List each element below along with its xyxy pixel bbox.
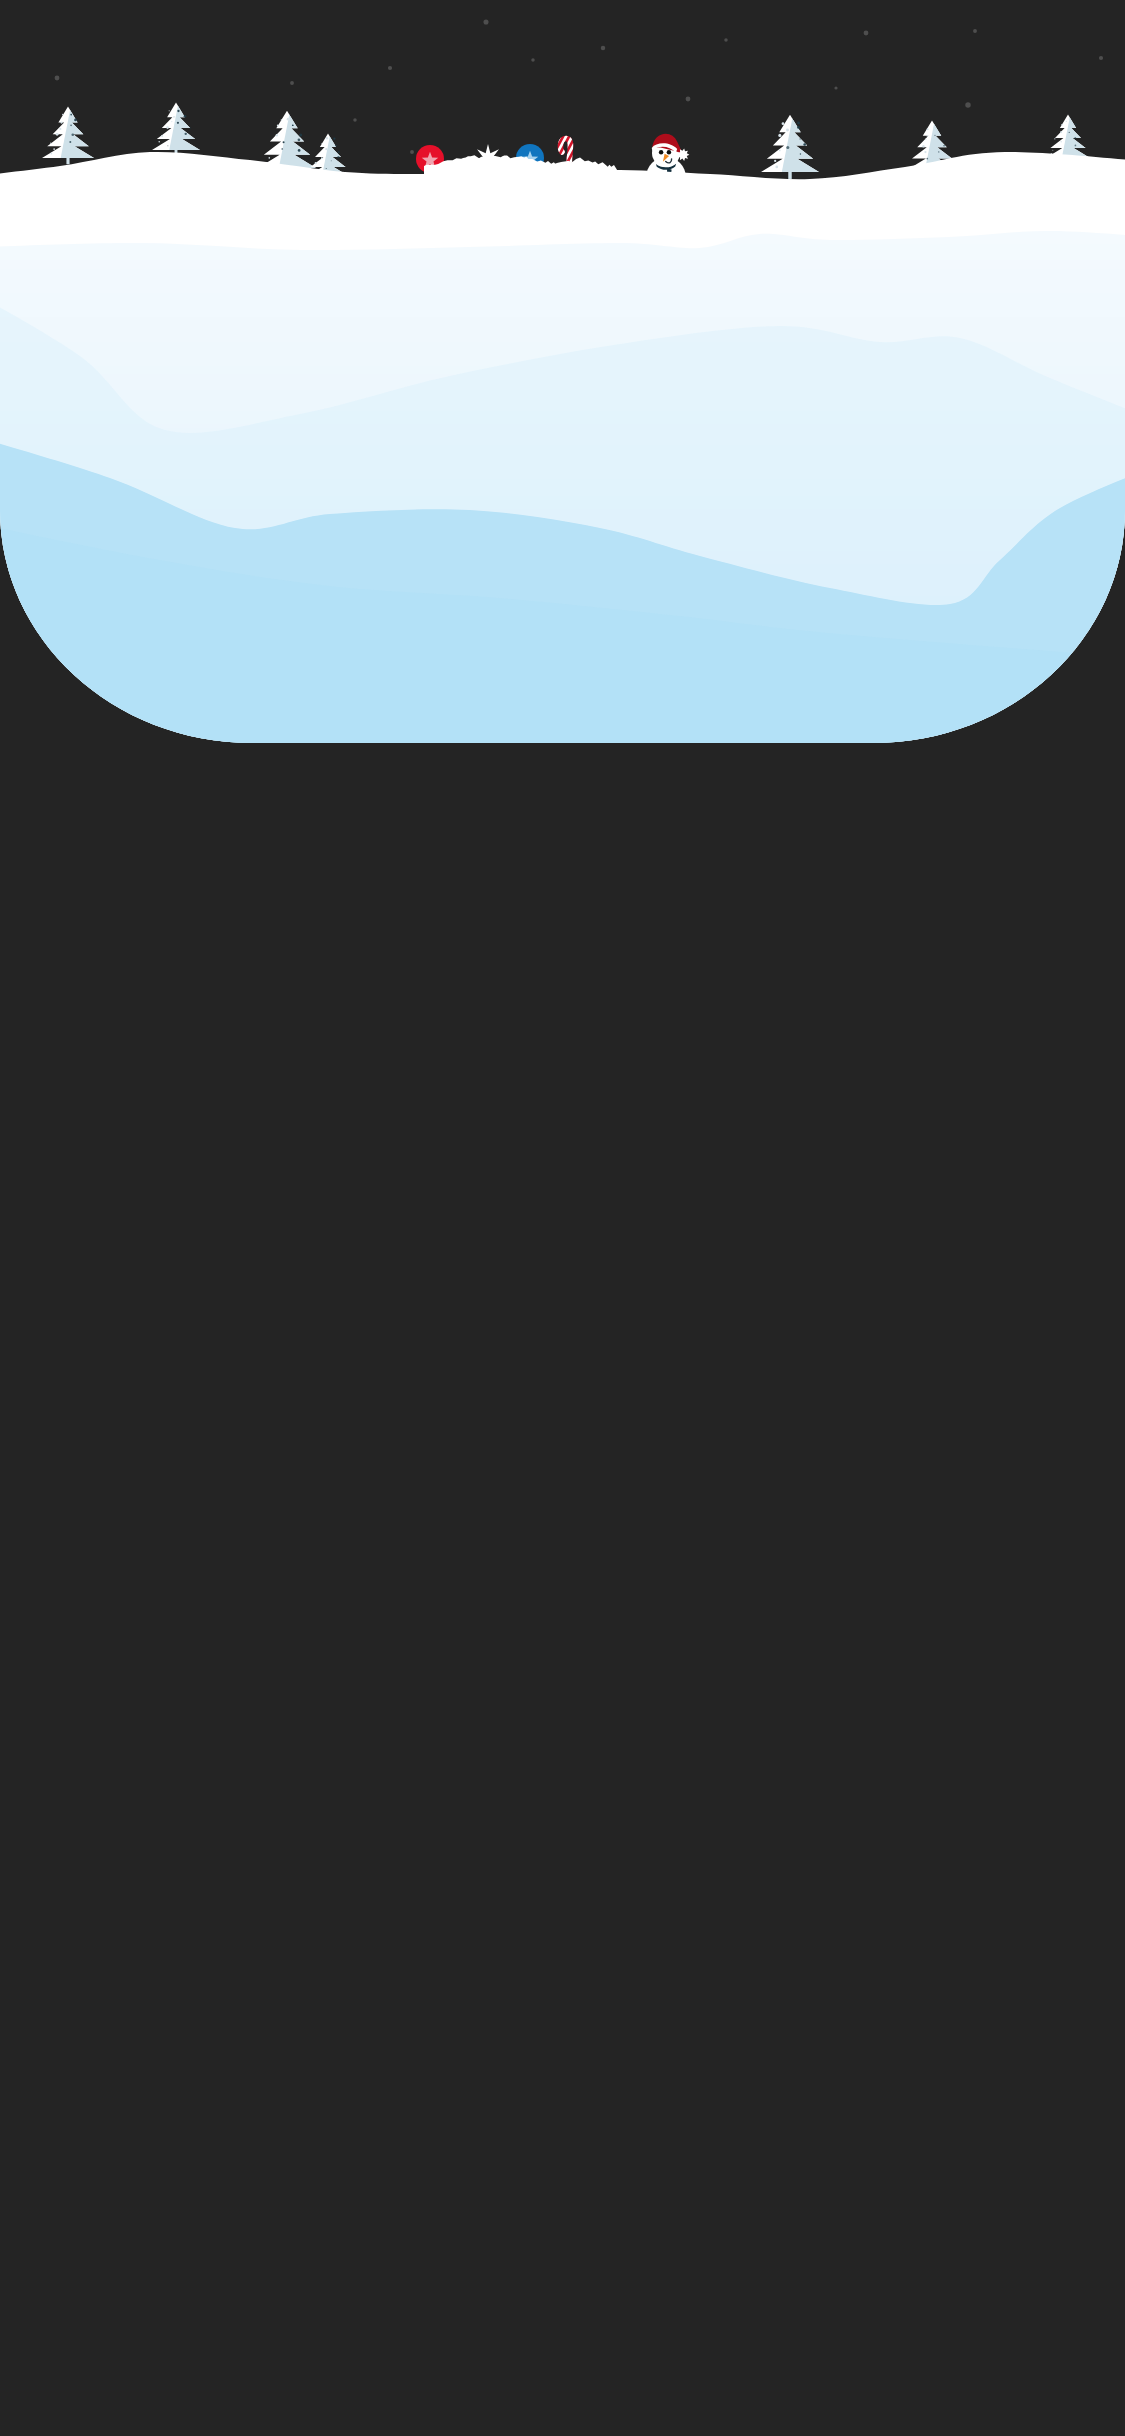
- button[interactable]: Winter scene: [0, 0, 1125, 742]
